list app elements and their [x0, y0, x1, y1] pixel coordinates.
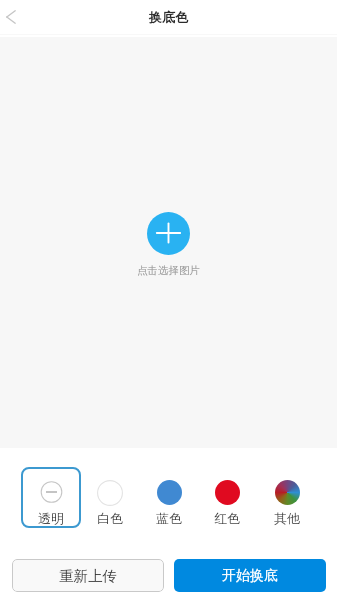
staticText: 其他 [274, 511, 300, 527]
button[interactable]: 其他 [257, 467, 317, 528]
button[interactable]: 重新上传 [12, 559, 164, 592]
staticText: 点击选择图片 [137, 264, 200, 277]
button[interactable]: Back [0, 0, 28, 35]
staticText: 白色 [97, 511, 123, 527]
staticText: 开始换底 [222, 567, 278, 585]
button[interactable]: 白色 [80, 467, 140, 528]
staticText: 透明 [38, 511, 64, 527]
staticText: 重新上传 [59, 567, 117, 585]
staticText: 换底色 [149, 9, 188, 25]
button[interactable]: Choose image [147, 212, 190, 255]
staticText: 红色 [214, 511, 240, 527]
staticText: 蓝色 [156, 511, 182, 527]
button[interactable]: 蓝色 [139, 467, 199, 528]
button[interactable]: 开始换底 [174, 559, 326, 592]
button[interactable]: 透明 [21, 467, 81, 528]
button[interactable]: 红色 [197, 467, 257, 528]
